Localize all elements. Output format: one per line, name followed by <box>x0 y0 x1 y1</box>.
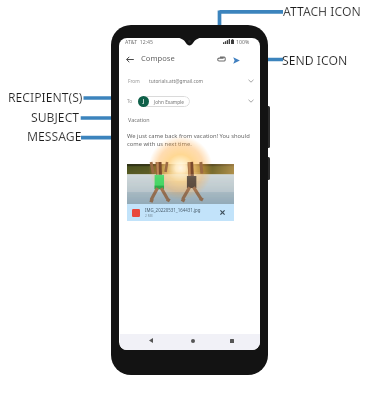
staticText: RECIPIENT(S) <box>8 89 83 106</box>
staticText: ATTACH ICON <box>283 3 361 20</box>
staticText: SUBJECT <box>31 109 80 126</box>
staticText: Vacation <box>128 116 150 123</box>
button[interactable]: Attach file <box>215 54 226 65</box>
staticText: To <box>127 98 133 105</box>
button[interactable]: Recent apps <box>225 334 238 347</box>
button[interactable]: Remove attachment <box>218 208 227 217</box>
button[interactable]: To <box>120 92 260 110</box>
button[interactable]: Send <box>231 55 241 65</box>
button[interactable]: Vacation <box>120 112 260 127</box>
staticText: John Example <box>154 99 184 105</box>
button[interactable]: IMG_20220531_164431.jpg <box>132 204 227 221</box>
staticText: 2 MB <box>145 214 153 218</box>
staticText: J <box>143 98 145 105</box>
staticText: SEND ICON <box>282 52 348 69</box>
staticText: IMG_20220531_164431.jpg <box>145 207 201 213</box>
staticText: We just came back from vacation! You sho… <box>127 132 252 148</box>
staticText: Compose <box>141 53 175 63</box>
staticText: tutorials.att@gmail.com <box>149 78 204 85</box>
button[interactable]: We just came back from vacation! You sho… <box>127 132 252 148</box>
staticText: 100% <box>236 38 250 45</box>
staticText: MESSAGE <box>27 128 82 145</box>
staticText: From <box>128 78 140 85</box>
button[interactable]: From <box>120 73 260 89</box>
button[interactable]: Back <box>123 53 136 66</box>
staticText: AT&T 12:45 <box>125 38 154 45</box>
button[interactable]: Back <box>144 334 157 347</box>
button[interactable]: Home <box>186 334 199 347</box>
